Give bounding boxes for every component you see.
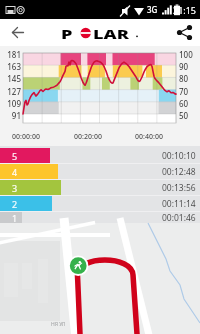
staticText: LAR <box>93 26 129 40</box>
staticText: 1 <box>12 212 18 223</box>
staticText: 3 <box>12 182 18 194</box>
staticText: P <box>61 26 73 40</box>
staticText: 00:12:48 <box>162 166 196 178</box>
staticText: 181 <box>0 49 21 60</box>
staticText: 91 <box>0 110 21 121</box>
staticText: 00:20:00 <box>67 132 109 142</box>
staticText: 127 <box>0 86 21 97</box>
staticText: 3G <box>147 4 158 15</box>
staticText: 100 <box>179 49 193 60</box>
button[interactable]: 4 <box>0 164 200 179</box>
staticText: 00:40:00 <box>128 132 170 142</box>
staticText: 145 <box>0 73 21 84</box>
staticText: 109 <box>0 98 21 109</box>
staticText: 00:13:56 <box>162 182 196 194</box>
staticText: 80 <box>179 73 189 84</box>
staticText: НЯ УЛ <box>51 321 66 328</box>
button[interactable]: Back <box>0 19 30 46</box>
staticText: 4 <box>12 166 18 178</box>
staticText: 00:11:14 <box>162 198 196 210</box>
staticText: 5 <box>12 150 18 162</box>
staticText: 70 <box>179 86 189 97</box>
staticText: 163 <box>0 61 21 72</box>
button[interactable]: 2 <box>0 196 200 211</box>
staticText: 00:01:46 <box>162 212 196 223</box>
staticText: 00:00:00 <box>5 132 47 142</box>
button[interactable]: 5 <box>0 148 200 163</box>
staticText: 2 <box>12 198 18 210</box>
button[interactable]: 1 <box>0 212 200 223</box>
staticText: 60 <box>179 98 189 109</box>
staticText: 21:15 <box>173 4 197 16</box>
staticText: 50 <box>179 110 189 121</box>
button[interactable]: Share <box>170 19 200 46</box>
staticText: 00:10:10 <box>162 150 196 162</box>
button[interactable]: 3 <box>0 180 200 195</box>
staticText: 90 <box>179 61 189 72</box>
button[interactable]: НЯ УЛ <box>0 223 200 334</box>
